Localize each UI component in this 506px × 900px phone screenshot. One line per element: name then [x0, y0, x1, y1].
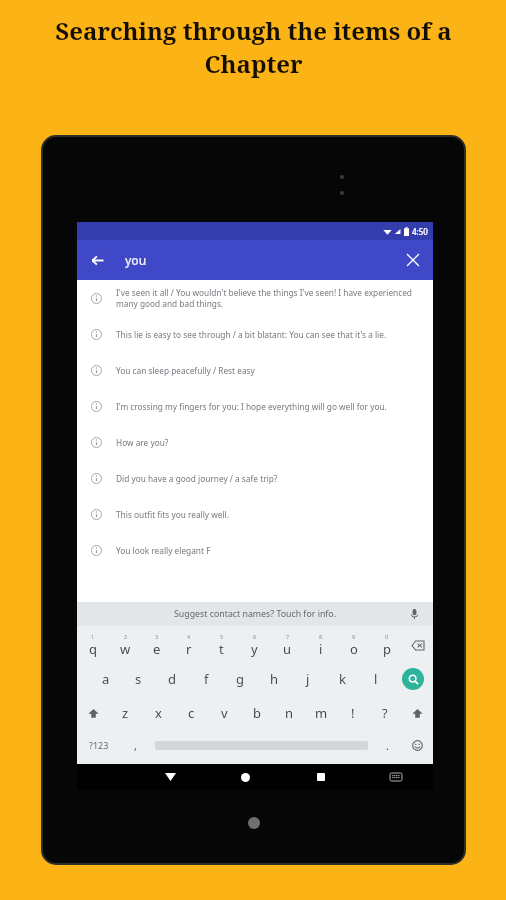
staticText: 2 — [124, 633, 128, 640]
staticText: 7 — [286, 633, 290, 640]
staticText: k — [339, 670, 346, 688]
button[interactable]: , — [121, 730, 149, 760]
staticText: z — [122, 704, 129, 722]
button[interactable]: n — [273, 696, 305, 730]
button[interactable]: 7 — [271, 628, 304, 662]
staticText: d — [168, 670, 176, 688]
button[interactable]: 8 — [304, 628, 337, 662]
button[interactable]: h — [257, 662, 291, 696]
button[interactable]: a — [89, 662, 122, 696]
staticText: 1 — [91, 633, 95, 640]
staticText: This lie is easy to see through / a bit … — [116, 329, 417, 340]
button[interactable]: d — [155, 662, 189, 696]
button[interactable]: m — [305, 696, 337, 730]
staticText: y — [251, 640, 258, 658]
staticText: 3 — [155, 633, 159, 640]
staticText: c — [188, 704, 195, 722]
button[interactable]: Shift — [401, 696, 433, 730]
staticText: 9 — [352, 633, 356, 640]
staticText: Searching through the items of a Chapter — [55, 14, 452, 80]
staticText: 4:50 — [412, 226, 428, 237]
staticText: You can sleep peacefully / Rest easy — [116, 365, 417, 376]
button[interactable]: j — [291, 662, 325, 696]
staticText: e — [153, 640, 161, 658]
staticText: i — [319, 640, 323, 658]
staticText: x — [155, 704, 162, 722]
button[interactable]: This lie is easy to see through / a bit … — [77, 316, 433, 352]
button[interactable]: Space — [149, 730, 373, 760]
button[interactable]: 2 — [109, 628, 141, 662]
button[interactable]: ?123 — [77, 730, 121, 760]
button[interactable]: 6 — [238, 628, 271, 662]
button[interactable]: You look really elegant F — [77, 532, 433, 568]
button[interactable]: . — [373, 730, 401, 760]
staticText: , — [134, 738, 137, 753]
staticText: h — [270, 670, 279, 688]
staticText: n — [285, 704, 294, 722]
button[interactable]: Recents — [283, 764, 358, 790]
button[interactable]: b — [241, 696, 273, 730]
button[interactable]: 5 — [205, 628, 238, 662]
staticText: b — [253, 704, 261, 722]
staticText: I've seen it all / You wouldn't believe … — [116, 287, 417, 309]
button[interactable]: Suggest contact names? Touch for info. — [77, 602, 433, 626]
button[interactable]: ! — [337, 696, 369, 730]
button[interactable]: How are you? — [77, 424, 433, 460]
button[interactable]: 4 — [173, 628, 205, 662]
staticText: q — [89, 640, 97, 658]
button[interactable]: Switch keyboard — [358, 764, 433, 790]
staticText: . — [386, 738, 389, 753]
button[interactable]: You can sleep peacefully / Rest easy — [77, 352, 433, 388]
button[interactable]: 1 — [77, 628, 109, 662]
button[interactable]: Emoji — [401, 730, 433, 760]
button[interactable]: x — [142, 696, 175, 730]
staticText: o — [350, 640, 358, 658]
staticText: ?123 — [89, 739, 109, 751]
button[interactable]: ? — [369, 696, 401, 730]
button[interactable]: 3 — [141, 628, 173, 662]
staticText: j — [306, 670, 310, 688]
staticText: r — [186, 640, 192, 658]
staticText: Suggest contact names? Touch for info. — [174, 608, 337, 620]
staticText: u — [283, 640, 292, 658]
staticText: I'm crossing my fingers for you: I hope … — [116, 401, 417, 412]
button[interactable]: z — [109, 696, 142, 730]
staticText: g — [236, 670, 244, 688]
button[interactable]: This outfit fits you really well. — [77, 496, 433, 532]
button[interactable]: 0 — [370, 628, 403, 662]
button[interactable]: I'm crossing my fingers for you: I hope … — [77, 388, 433, 424]
button[interactable]: l — [359, 662, 393, 696]
staticText: 4 — [187, 633, 191, 640]
staticText: w — [120, 640, 131, 658]
button[interactable]: Did you have a good journey / a safe tri… — [77, 460, 433, 496]
button[interactable]: c — [175, 696, 208, 730]
button[interactable]: 9 — [337, 628, 370, 662]
button[interactable]: Clear search — [393, 240, 433, 280]
staticText: 5 — [220, 633, 224, 640]
button[interactable]: I've seen it all / You wouldn't believe … — [77, 280, 433, 316]
button[interactable]: v — [208, 696, 241, 730]
staticText: f — [204, 670, 209, 688]
button[interactable]: f — [189, 662, 223, 696]
button[interactable]: Search — [393, 662, 433, 696]
staticText: Did you have a good journey / a safe tri… — [116, 473, 417, 484]
button[interactable]: Back — [77, 240, 117, 280]
staticText: you — [125, 252, 393, 268]
button[interactable]: Shift — [77, 696, 109, 730]
button[interactable]: Home — [208, 764, 283, 790]
staticText: l — [374, 670, 378, 688]
staticText: s — [135, 670, 142, 688]
button[interactable]: Back — [132, 764, 208, 790]
button[interactable]: s — [122, 662, 155, 696]
button[interactable]: Backspace — [403, 628, 433, 662]
button[interactable]: Voice input — [404, 604, 424, 624]
staticText: m — [315, 704, 328, 722]
button[interactable]: k — [325, 662, 359, 696]
staticText: ! — [351, 704, 355, 722]
staticText: t — [219, 640, 224, 658]
staticText: You look really elegant F — [116, 545, 417, 556]
staticText: a — [102, 670, 110, 688]
staticText: v — [221, 704, 228, 722]
button[interactable]: g — [223, 662, 257, 696]
staticText: 0 — [385, 633, 389, 640]
